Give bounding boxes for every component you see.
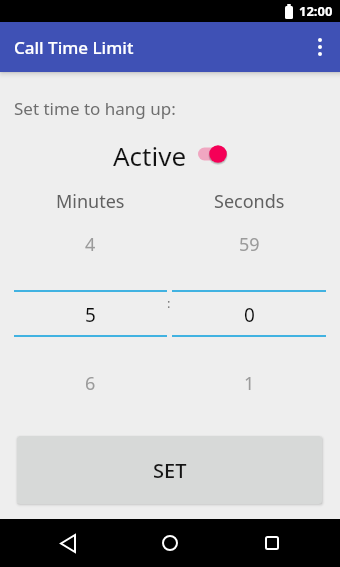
staticText: 0 bbox=[244, 302, 255, 323]
button[interactable]: Active bbox=[0, 138, 340, 170]
staticText: 1 bbox=[244, 371, 255, 391]
staticText: 6 bbox=[85, 371, 96, 391]
staticText: 4 bbox=[85, 232, 96, 252]
button[interactable] bbox=[300, 22, 340, 72]
button[interactable] bbox=[238, 519, 306, 567]
button[interactable]: SET bbox=[17, 436, 322, 504]
staticText: SET bbox=[153, 457, 187, 484]
button[interactable] bbox=[136, 519, 204, 567]
staticText: 5 bbox=[85, 302, 96, 323]
button[interactable] bbox=[34, 519, 102, 567]
staticText: 59 bbox=[239, 232, 260, 252]
staticText: Seconds bbox=[214, 189, 285, 209]
staticText: Minutes bbox=[56, 189, 125, 209]
staticText: : bbox=[167, 294, 171, 312]
staticText: 12:00 bbox=[299, 2, 333, 20]
staticText: Active bbox=[113, 138, 187, 170]
staticText: Set time to hang up: bbox=[14, 97, 176, 120]
staticText: Call Time Limit bbox=[14, 36, 134, 59]
